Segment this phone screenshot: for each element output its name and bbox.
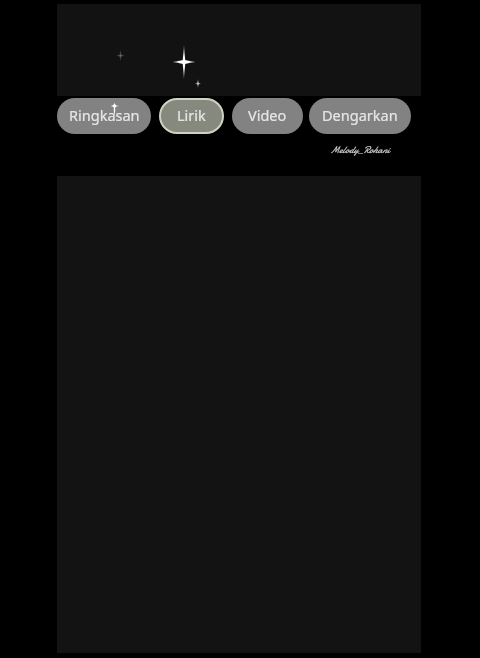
button[interactable]: Lirik xyxy=(159,98,224,134)
staticText: Dengarkan xyxy=(322,105,398,125)
staticText: Melody_Rohani xyxy=(330,143,390,157)
button[interactable]: Dengarkan xyxy=(309,98,411,134)
staticText: Lirik xyxy=(177,105,206,125)
button[interactable]: Ringkasan xyxy=(57,98,151,134)
button[interactable]: Video xyxy=(232,98,303,134)
staticText: Video xyxy=(248,105,287,125)
staticText: Ringkasan xyxy=(69,105,140,125)
button[interactable]: AI sparkle xyxy=(57,4,421,96)
